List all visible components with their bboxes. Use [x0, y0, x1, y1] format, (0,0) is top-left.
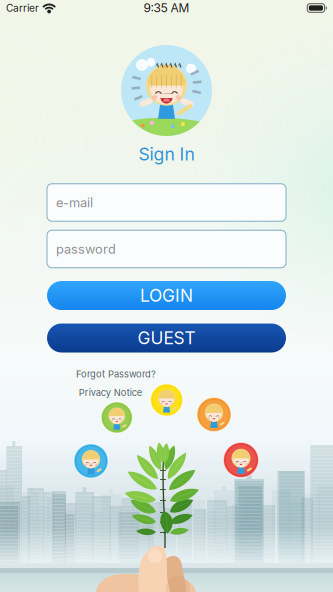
button[interactable]: Forgot Password?	[76, 368, 156, 380]
staticText: e-mail	[56, 195, 93, 210]
staticText: Forgot Password?	[76, 368, 156, 380]
button[interactable]: Privacy Notice	[79, 387, 142, 398]
button[interactable]: e-mail	[47, 184, 286, 221]
button[interactable]: GUEST	[47, 323, 286, 352]
staticText: Privacy Notice	[79, 387, 142, 398]
staticText: password	[56, 241, 116, 257]
staticText: 9:35 AM	[143, 1, 189, 15]
staticText: LOGIN	[140, 285, 193, 306]
button[interactable]: LOGIN	[47, 281, 286, 310]
staticText: Sign In	[138, 143, 194, 165]
button[interactable]: password	[47, 230, 286, 268]
staticText: Carrier	[6, 2, 39, 14]
staticText: GUEST	[137, 327, 195, 348]
